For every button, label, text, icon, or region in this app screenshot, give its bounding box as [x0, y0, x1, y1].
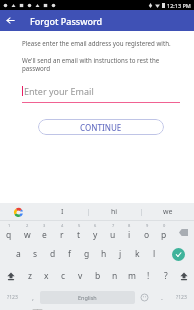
staticText: We'll send an email with instructions to… — [22, 56, 180, 72]
staticText: 5 — [78, 223, 81, 228]
button[interactable]: 3 — [36, 221, 53, 243]
button[interactable]: h — [95, 243, 112, 265]
staticText: y — [93, 229, 98, 241]
staticText: c — [61, 270, 66, 282]
staticText: f — [68, 248, 71, 260]
staticText: v — [78, 270, 83, 282]
button[interactable]: Google — [0, 203, 36, 221]
staticText: 8 — [128, 223, 131, 228]
staticText: hi — [111, 207, 118, 217]
button[interactable]: k — [129, 243, 146, 265]
staticText: m — [128, 270, 136, 282]
button[interactable]: 9 — [138, 221, 155, 243]
button[interactable]: Shift — [0, 265, 21, 287]
button[interactable]: I — [36, 203, 88, 221]
staticText: p — [161, 229, 167, 241]
staticText: b — [95, 270, 101, 282]
staticText: 4 — [61, 223, 64, 228]
staticText: Please enter the email address you regis… — [22, 39, 171, 47]
staticText: . — [161, 293, 163, 303]
staticText: h — [101, 248, 107, 260]
button[interactable]: 6 — [87, 221, 104, 243]
staticText: t — [77, 229, 81, 241]
staticText: k — [135, 248, 140, 260]
staticText: ?123 — [176, 294, 187, 301]
staticText: d — [50, 248, 56, 260]
button[interactable]: Enter your Email — [22, 85, 180, 103]
staticText: j — [119, 248, 122, 260]
staticText: 3 — [43, 223, 46, 228]
staticText: 7 — [112, 223, 115, 228]
button[interactable]: x — [38, 265, 55, 287]
button[interactable]: v — [72, 265, 89, 287]
staticText: s — [33, 248, 38, 260]
staticText: ?123 — [7, 294, 18, 301]
button[interactable]: Backspace — [172, 221, 194, 243]
staticText: n — [112, 270, 118, 282]
button[interactable]: ? — [157, 265, 174, 287]
button[interactable]: c — [55, 265, 72, 287]
button[interactable]: b — [89, 265, 106, 287]
staticText: l — [153, 248, 156, 260]
staticText: 0 — [163, 223, 166, 228]
button[interactable]: d — [44, 243, 61, 265]
button[interactable]: Shift — [174, 265, 194, 287]
button[interactable]: z — [21, 265, 38, 287]
button[interactable]: CONTINUE — [38, 119, 164, 135]
button[interactable]: , — [25, 287, 40, 308]
button[interactable]: Back — [0, 10, 21, 31]
staticText: 2 — [26, 223, 29, 228]
button[interactable]: j — [112, 243, 129, 265]
button[interactable]: s — [27, 243, 44, 265]
staticText: , — [32, 293, 34, 303]
staticText: CONTINUE — [80, 122, 122, 133]
button[interactable]: 5 — [70, 221, 87, 243]
button[interactable]: l — [146, 243, 163, 265]
button[interactable]: 8 — [121, 221, 138, 243]
staticText: i — [128, 229, 131, 241]
button[interactable]: ?123 — [169, 287, 194, 308]
staticText: q — [6, 229, 12, 241]
button[interactable]: 1 — [0, 221, 18, 243]
staticText: a — [16, 248, 21, 260]
staticText: we — [163, 207, 173, 217]
staticText: z — [28, 270, 32, 282]
button[interactable]: ?123 — [0, 287, 25, 308]
button[interactable]: f — [61, 243, 78, 265]
button[interactable]: a — [10, 243, 27, 265]
staticText: Forgot Password — [30, 15, 103, 27]
staticText: ? — [164, 270, 168, 282]
staticText: English — [78, 294, 97, 301]
staticText: I — [61, 207, 64, 217]
button[interactable]: English — [40, 291, 135, 304]
staticText: 1 — [8, 223, 11, 228]
button[interactable]: we — [141, 203, 194, 221]
staticText: r — [60, 229, 64, 241]
staticText: Enter your Email — [24, 85, 94, 97]
button[interactable]: 4 — [53, 221, 70, 243]
button[interactable]: hi — [88, 203, 141, 221]
staticText: o — [144, 229, 150, 241]
staticText: g — [84, 248, 90, 260]
staticText: 9 — [146, 223, 149, 228]
staticText: 12:13 PM — [167, 2, 191, 9]
staticText: w — [24, 229, 31, 241]
button[interactable]: Emoji — [135, 287, 154, 308]
staticText: ! — [147, 270, 150, 282]
staticText: 6 — [94, 223, 97, 228]
button[interactable]: 2 — [18, 221, 36, 243]
button[interactable]: Enter — [163, 243, 194, 265]
button[interactable]: 7 — [104, 221, 121, 243]
button[interactable]: m — [123, 265, 140, 287]
button[interactable]: n — [106, 265, 123, 287]
staticText: e — [42, 229, 47, 241]
button[interactable]: g — [78, 243, 95, 265]
button[interactable]: ! — [140, 265, 157, 287]
staticText: u — [110, 229, 116, 241]
staticText: x — [44, 270, 49, 282]
button[interactable]: 0 — [155, 221, 172, 243]
